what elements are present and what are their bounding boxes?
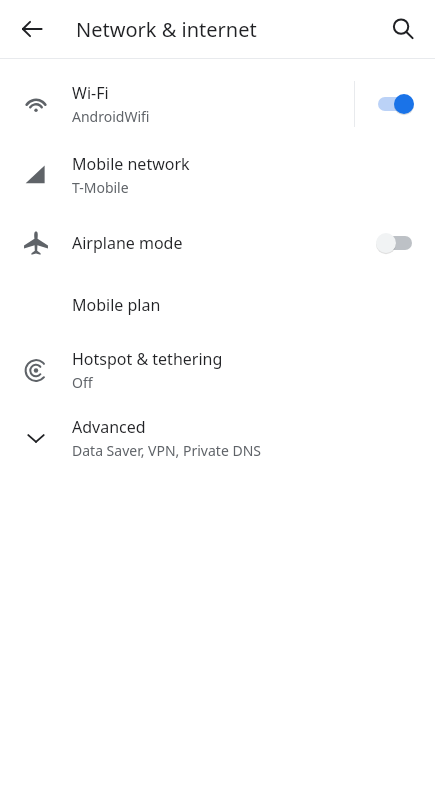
button[interactable]: Mobile network: [0, 139, 435, 211]
staticText: Advanced: [72, 416, 146, 438]
button[interactable]: Wi-Fi toggle, on: [355, 76, 435, 132]
button[interactable]: Airplane mode: [0, 211, 435, 275]
staticText: Off: [72, 373, 93, 392]
button[interactable]: Search: [379, 5, 427, 53]
button[interactable]: Wi-Fi: [0, 69, 435, 139]
staticText: AndroidWifi: [72, 107, 150, 126]
button[interactable]: Hotspot & tethering: [0, 335, 435, 405]
staticText: Hotspot & tethering: [72, 348, 223, 370]
button[interactable]: Back: [8, 5, 56, 53]
button[interactable]: Advanced: [0, 405, 435, 471]
staticText: T-Mobile: [72, 178, 129, 197]
staticText: Wi-Fi: [72, 82, 109, 104]
button[interactable]: Airplane mode toggle, off: [355, 215, 435, 271]
staticText: Network & internet: [76, 16, 257, 43]
staticText: Airplane mode: [72, 232, 183, 254]
staticText: Mobile plan: [72, 294, 161, 316]
staticText: Data Saver, VPN, Private DNS: [72, 441, 261, 460]
button[interactable]: Mobile plan: [0, 275, 435, 335]
staticText: Mobile network: [72, 153, 190, 175]
